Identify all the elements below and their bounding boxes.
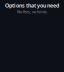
staticText: No fees, no limits <box>17 9 47 14</box>
staticText: Options that you need <box>5 2 59 9</box>
